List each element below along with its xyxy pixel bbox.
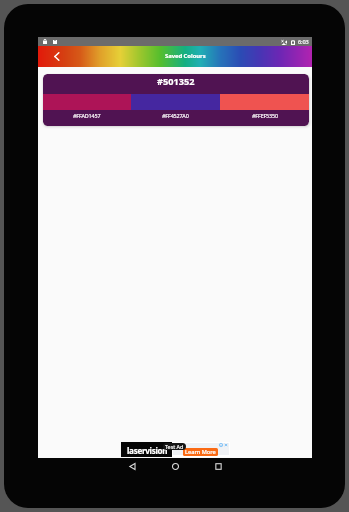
staticText: #FFAD1457 xyxy=(73,112,101,119)
button[interactable]: laservision xyxy=(121,442,230,457)
button[interactable]: Back xyxy=(111,460,154,473)
button[interactable]: #501352 xyxy=(43,74,309,126)
staticText: #FFEF5350 xyxy=(252,112,278,119)
staticText: Saved Colours xyxy=(165,52,206,60)
staticText: 6:03 xyxy=(298,38,309,46)
button[interactable]: Home xyxy=(154,460,197,473)
button[interactable]: Recent apps xyxy=(197,460,240,473)
staticText: Learn More xyxy=(185,448,216,456)
staticText: #FF4527A0 xyxy=(162,112,189,119)
staticText: Test Ad xyxy=(165,443,184,450)
staticText: #501352 xyxy=(157,75,195,88)
button[interactable]: Back xyxy=(46,46,67,67)
button[interactable]: Learn More xyxy=(183,448,218,456)
staticText: laservision xyxy=(127,445,168,456)
